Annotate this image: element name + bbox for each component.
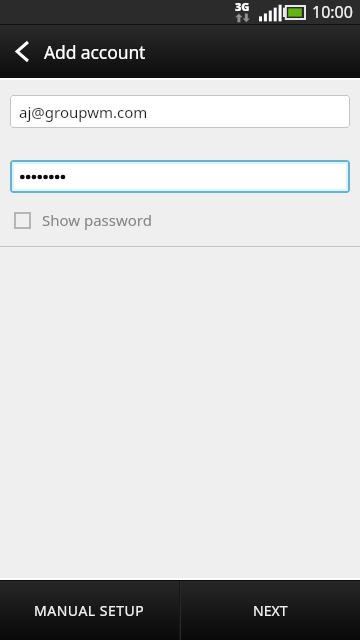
button[interactable]: MANUAL SETUP <box>0 581 179 640</box>
staticText: MANUAL SETUP <box>34 601 145 620</box>
staticText: Show password <box>42 210 152 230</box>
staticText: aj@groupwm.com <box>19 102 148 122</box>
staticText: 3G <box>235 0 250 14</box>
staticText: NEXT <box>253 601 288 620</box>
button[interactable]: Show password <box>0 207 360 233</box>
button[interactable]: Back <box>0 25 44 78</box>
button[interactable]: aj@groupwm.com <box>10 95 350 128</box>
button[interactable] <box>12 162 348 191</box>
staticText: Add account <box>44 40 146 64</box>
button[interactable]: NEXT <box>181 581 360 640</box>
staticText: 10:00 <box>312 1 353 23</box>
